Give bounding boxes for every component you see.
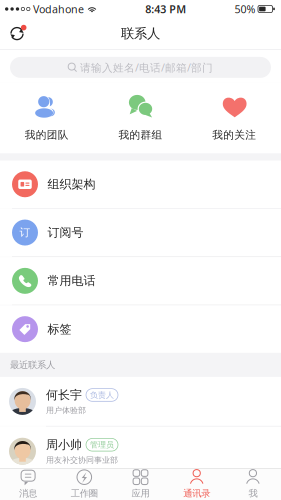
button[interactable]: 我的群组 (94, 83, 187, 153)
button[interactable]: 订 (0, 209, 281, 256)
staticText: 工作圈 (71, 488, 98, 499)
staticText: 我的群组 (118, 128, 162, 141)
button[interactable]: 工作圈 (56, 469, 112, 500)
staticText: 订阅号 (47, 225, 83, 240)
staticText: 消息 (19, 488, 37, 499)
button[interactable]: 常用电话 (0, 257, 281, 305)
staticText: 标签 (47, 322, 71, 336)
staticText: 最近联系人 (10, 359, 55, 371)
staticText: 周小帅 (46, 437, 82, 452)
staticText: 应用 (131, 488, 149, 499)
button[interactable]: 组织架构 (0, 160, 281, 208)
button[interactable]: 我的关注 (187, 83, 281, 153)
button[interactable]: 消息 (0, 469, 56, 500)
staticText: 8:43 PM (145, 2, 186, 16)
staticText: 用友补交协同事业部 (46, 455, 118, 465)
staticText: 50% (234, 2, 255, 16)
staticText: 我 (248, 488, 257, 499)
button[interactable]: 我的团队 (0, 83, 94, 153)
button[interactable]: 同步 (3, 20, 32, 47)
button[interactable]: 周小帅 (0, 427, 281, 476)
staticText: 订 (19, 226, 30, 239)
staticText: 通讯录 (183, 488, 210, 499)
button[interactable]: 通讯录 (169, 469, 225, 500)
staticText: 管理员 (90, 440, 114, 450)
staticText: 我的关注 (212, 128, 256, 141)
button[interactable]: 何长宇 (0, 377, 281, 426)
staticText: 何长宇 (46, 388, 82, 402)
staticText: 我的团队 (25, 128, 69, 141)
staticText: 常用电话 (47, 273, 95, 288)
button[interactable]: 我 (225, 469, 281, 500)
staticText: Vodahone (33, 2, 84, 16)
staticText: 请输入姓名/电话/邮箱/部门 (80, 60, 213, 74)
button[interactable]: 请输入姓名/电话/邮箱/部门 (10, 57, 271, 78)
staticText: 联系人 (121, 25, 160, 42)
staticText: 用户体验部 (46, 405, 86, 415)
staticText: 负责人 (90, 390, 114, 400)
button[interactable]: 标签 (0, 305, 281, 353)
button[interactable]: 应用 (112, 469, 169, 500)
staticText: 组织架构 (47, 177, 95, 192)
